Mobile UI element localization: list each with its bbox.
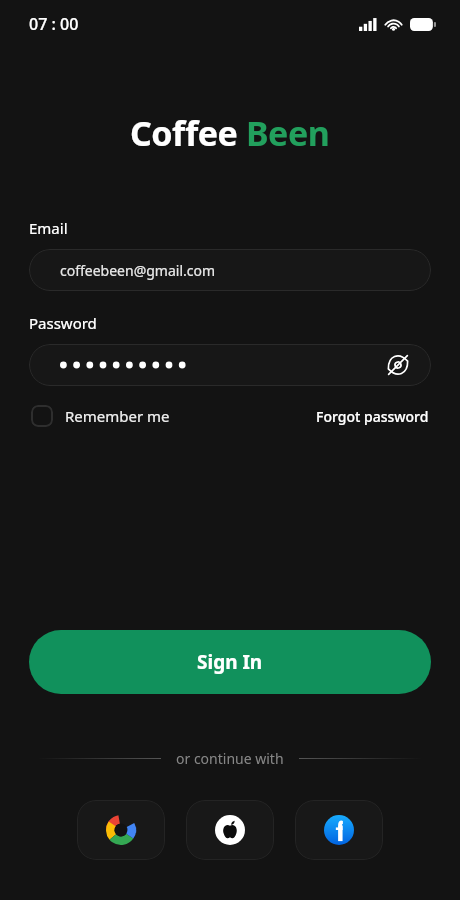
staticText: Remember me — [65, 406, 170, 426]
button[interactable]: Show password — [383, 350, 413, 380]
button[interactable]: Remember me — [31, 405, 170, 427]
staticText: Coffee — [130, 110, 246, 156]
staticText: Email — [29, 218, 68, 238]
button[interactable]: Sign in with Facebook — [295, 800, 383, 860]
staticText: or continue with — [176, 749, 284, 768]
staticText: coffeebeen@gmail.com — [60, 261, 216, 280]
button[interactable]: Sign in with Apple — [186, 800, 274, 860]
staticText: Been — [246, 110, 330, 156]
staticText: 07 : 00 — [29, 13, 79, 35]
button[interactable]: Show password — [29, 344, 431, 386]
staticText: Sign In — [197, 649, 263, 675]
staticText: Password — [29, 313, 97, 333]
button[interactable]: Sign in with Google — [77, 800, 165, 860]
staticText: Forgot password — [316, 407, 429, 426]
button[interactable]: Forgot password — [316, 407, 429, 426]
button[interactable]: Sign In — [29, 630, 431, 694]
button[interactable]: coffeebeen@gmail.com — [29, 249, 431, 291]
